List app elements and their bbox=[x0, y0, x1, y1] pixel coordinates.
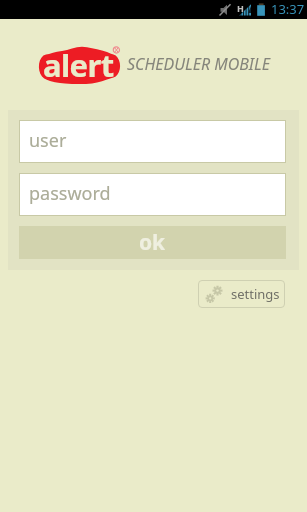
button[interactable]: ok bbox=[19, 226, 286, 259]
button[interactable]: user bbox=[20, 121, 285, 162]
staticText: user bbox=[29, 128, 67, 153]
staticText: H bbox=[237, 2, 244, 14]
staticText: SCHEDULER MOBILE bbox=[127, 53, 270, 75]
button[interactable]: password bbox=[20, 174, 285, 215]
staticText: alert bbox=[43, 44, 114, 86]
staticText: 13:37 bbox=[271, 0, 305, 18]
button[interactable]: settings bbox=[198, 280, 285, 308]
staticText: settings bbox=[231, 285, 280, 303]
staticText: password bbox=[29, 181, 111, 206]
staticText: ok bbox=[139, 228, 166, 257]
